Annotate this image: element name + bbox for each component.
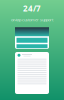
staticText: 24/7 [23, 3, 41, 14]
staticText: on-tap customer support [11, 17, 53, 22]
